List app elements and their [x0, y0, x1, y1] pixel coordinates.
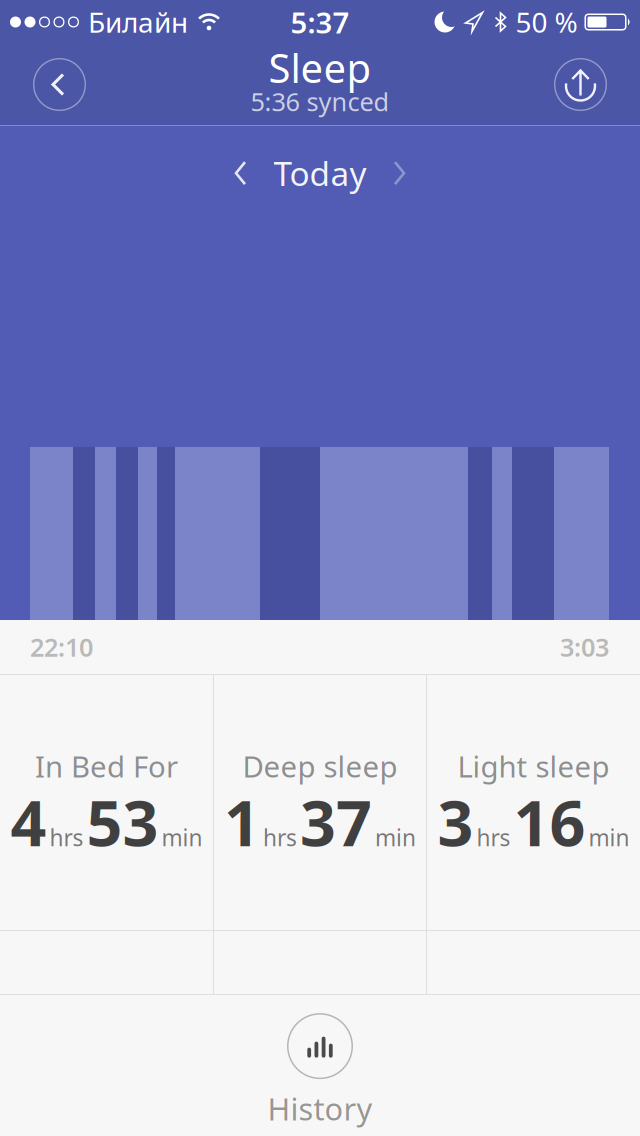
staticText: min	[588, 822, 629, 853]
staticText: 3:03	[560, 630, 609, 664]
staticText: Today	[273, 151, 366, 195]
staticText: 16	[513, 780, 585, 864]
staticText: 22:10	[30, 630, 93, 664]
staticText: hrs	[263, 822, 297, 853]
staticText: Sleep	[268, 41, 371, 94]
staticText: Билайн	[88, 3, 188, 41]
button[interactable]	[554, 58, 607, 111]
staticText: In Bed For	[35, 746, 178, 785]
staticText: 37	[300, 780, 372, 864]
staticText: hrs	[476, 822, 510, 853]
staticText: 5:36 synced	[250, 85, 389, 118]
button[interactable]	[226, 152, 255, 194]
staticText: 1	[224, 780, 260, 864]
staticText: 5:37	[290, 2, 349, 41]
button[interactable]	[33, 58, 86, 111]
staticText: 53	[86, 780, 158, 864]
staticText: min	[375, 822, 416, 853]
staticText: hrs	[49, 822, 83, 853]
staticText: Deep sleep	[242, 746, 397, 785]
staticText: min	[161, 822, 202, 853]
staticText: 50 %	[515, 3, 577, 41]
staticText: Light sleep	[457, 746, 609, 785]
button[interactable]	[385, 152, 414, 194]
staticText: 4	[10, 780, 46, 864]
staticText: 3	[437, 780, 473, 864]
staticText: History	[267, 1088, 372, 1129]
button[interactable]: History	[267, 1013, 372, 1129]
